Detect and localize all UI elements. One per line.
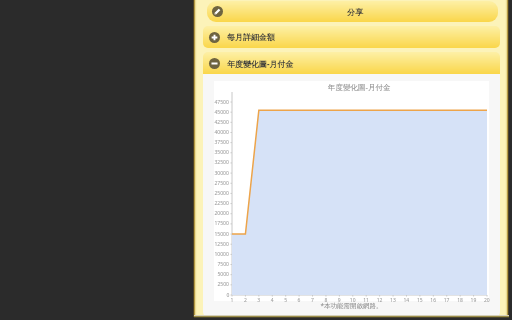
staticText: 每月詳細金額 <box>227 32 275 42</box>
staticText: 年度變化圖-月付金 <box>227 58 294 69</box>
button[interactable]: 年度變化圖-月付金 <box>203 52 500 74</box>
button[interactable]: 每月詳細金額 <box>203 26 500 48</box>
staticText: 分享 <box>347 7 363 17</box>
button[interactable]: 分享 <box>207 1 498 22</box>
staticText: *本功能需開啟網路。 <box>203 301 500 310</box>
